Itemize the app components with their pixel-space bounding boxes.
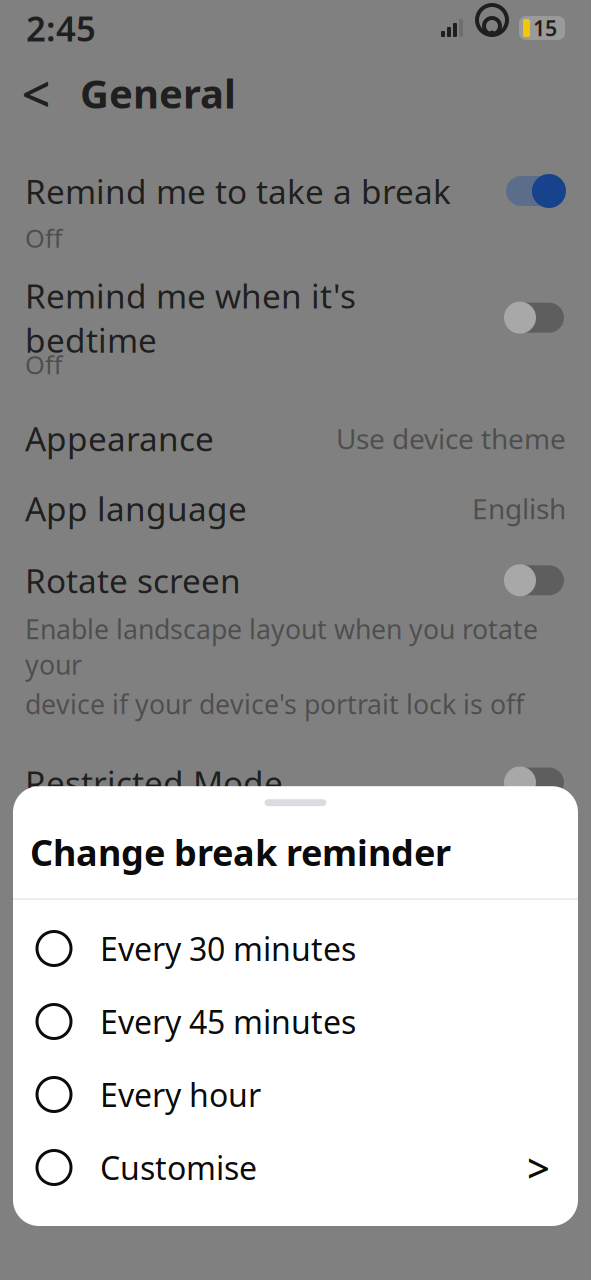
button[interactable]: Every 45 minutes — [13, 985, 578, 1058]
staticText: Every 45 minutes — [100, 1000, 356, 1043]
staticText: this app on this device — [25, 963, 304, 999]
staticText: General — [80, 66, 236, 119]
staticText: This helps to hide potentially mature vi… — [25, 813, 482, 884]
staticText: 2:45 — [26, 5, 96, 51]
button[interactable]: Remind me to take a break — [0, 158, 591, 265]
button[interactable]: Appearance — [0, 403, 591, 473]
button[interactable]: Rotate screen — [0, 549, 591, 729]
staticText: 15 — [533, 14, 557, 42]
staticText: Customise — [100, 1146, 257, 1189]
staticText: < — [21, 59, 50, 127]
staticText: Remind me to take a break — [25, 169, 451, 213]
staticText: device if your device's portrait lock is… — [25, 686, 524, 721]
staticText: English — [472, 490, 566, 527]
staticText: Off — [25, 348, 62, 381]
button[interactable]: Back — [10, 67, 62, 119]
button[interactable]: Every hour — [13, 1058, 578, 1131]
staticText: Remind me when it's bedtime — [25, 273, 356, 362]
staticText: > — [527, 1141, 550, 1194]
staticText: Off — [25, 221, 62, 255]
button[interactable]: App language — [0, 473, 591, 543]
staticText: Use device theme — [336, 420, 566, 457]
staticText: filter is 100% accurate. This setting on… — [25, 888, 518, 959]
staticText: Every 30 minutes — [100, 927, 356, 970]
staticText: Restricted Mode — [25, 760, 283, 805]
staticText: Enable landscape layout when you rotate … — [25, 611, 538, 682]
staticText: Rotate screen — [25, 558, 241, 602]
staticText: Every hour — [100, 1073, 261, 1116]
button[interactable]: Every 30 minutes — [13, 912, 578, 985]
button[interactable]: Remind me when it's bedtime — [0, 285, 591, 391]
staticText: Appearance — [25, 416, 214, 460]
button[interactable]: Customise — [13, 1131, 578, 1204]
staticText: Change break reminder — [30, 828, 451, 876]
staticText: App language — [25, 486, 247, 530]
button[interactable]: Restricted Mode — [0, 751, 591, 1007]
